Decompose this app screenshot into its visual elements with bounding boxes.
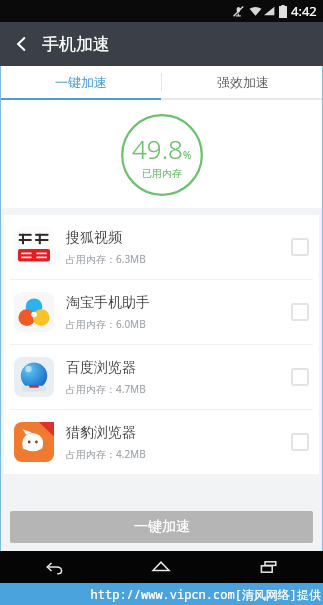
staticText: 4:42 [291,2,317,20]
button[interactable]: Back [0,22,44,66]
staticText: 已用内存 [142,167,182,180]
staticText: 占用内存：6.3MB [66,252,146,266]
staticText: http://www.vipcn.com[清风网络]提供 [90,586,321,602]
button[interactable]: 强效加速 [162,66,323,98]
button[interactable]: 一键加速 [10,511,313,543]
staticText: 手机加速 [42,34,110,55]
button[interactable]: Select 百度浏览器 [291,368,309,386]
button[interactable]: 淘宝手机助手 [4,280,319,344]
button[interactable]: Recent apps [215,551,323,583]
staticText: 占用内存：6.0MB [66,317,146,331]
button[interactable]: 一键加速 [0,66,161,98]
staticText: 一键加速 [55,74,107,90]
staticText: 一键加速 [134,518,190,536]
button[interactable]: Select 搜狐视频 [291,238,309,256]
button[interactable]: Home [107,551,215,583]
staticText: 49.8 [132,131,183,166]
button[interactable]: 百度浏览器 [4,345,319,409]
button[interactable]: Select 猎豹浏览器 [291,433,309,451]
button[interactable]: Back [0,551,107,583]
button[interactable]: 搜狐视频 [4,215,319,279]
staticText: 搜狐视频 [66,229,122,247]
staticText: 百度浏览器 [66,359,136,377]
staticText: 强效加速 [217,74,269,90]
staticText: 占用内存：4.2MB [66,447,146,461]
staticText: 淘宝手机助手 [66,294,150,312]
button[interactable]: Select 淘宝手机助手 [291,303,309,321]
staticText: 占用内存：4.7MB [66,382,146,396]
button[interactable]: 猎豹浏览器 [4,410,319,474]
staticText: 猎豹浏览器 [66,424,136,442]
staticText: % [183,148,192,162]
